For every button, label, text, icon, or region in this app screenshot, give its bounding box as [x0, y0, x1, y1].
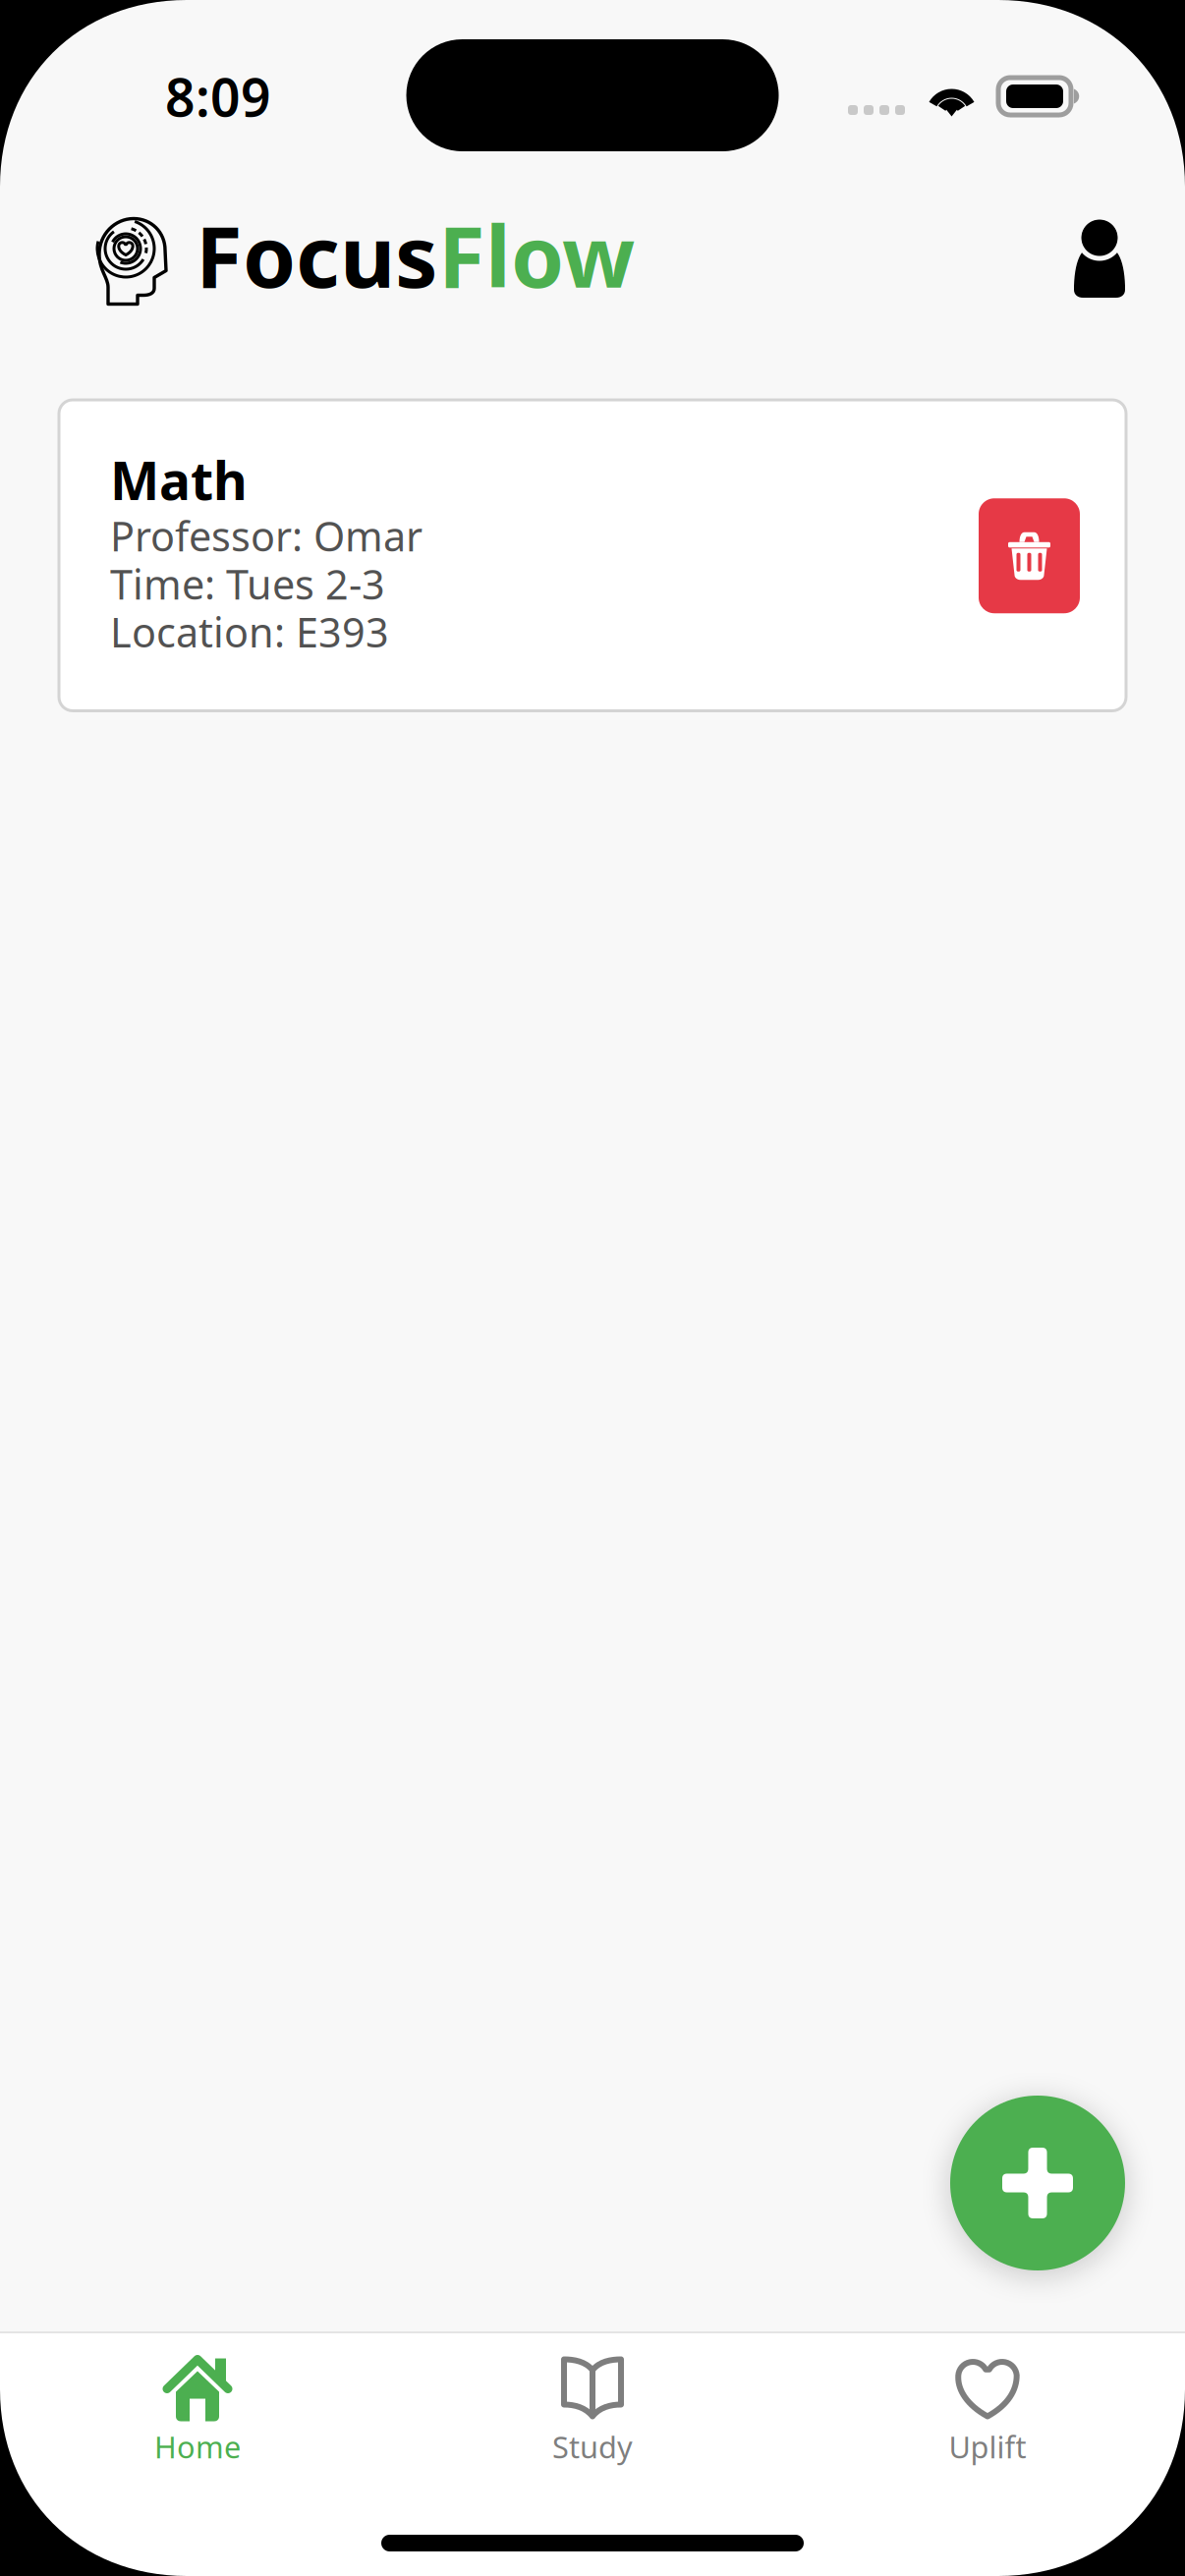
button[interactable]: Delete Math — [979, 494, 1080, 609]
button[interactable]: Add course — [950, 2096, 1125, 2270]
staticText: Focus — [196, 198, 438, 311]
staticText: Professor: Omar — [110, 509, 423, 563]
staticText: Location: E393 — [110, 605, 389, 659]
button[interactable]: Profile — [1073, 222, 1126, 287]
staticText: Study — [552, 2427, 633, 2467]
staticText: Uplift — [949, 2427, 1026, 2467]
staticText: Time: Tues 2-3 — [110, 557, 385, 611]
staticText: Math — [110, 445, 248, 515]
staticText: 8:09 — [165, 62, 271, 131]
staticText: Home — [154, 2427, 241, 2467]
staticText: Flow — [438, 198, 635, 311]
button[interactable]: Home — [0, 2333, 395, 2467]
button[interactable]: Uplift — [790, 2333, 1185, 2467]
button[interactable]: Study — [395, 2333, 790, 2467]
